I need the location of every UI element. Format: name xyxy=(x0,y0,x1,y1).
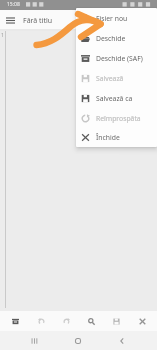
staticText: 15:08 xyxy=(7,1,20,8)
staticText: Reîmprospăta xyxy=(96,114,141,123)
button[interactable]: Home xyxy=(68,331,87,350)
button[interactable]: Deschide (SAF) xyxy=(76,48,157,68)
button[interactable]: Open file xyxy=(5,311,25,331)
staticText: Închide xyxy=(96,133,120,142)
staticText: Deschide (SAF) xyxy=(96,54,143,63)
button[interactable]: Redo xyxy=(56,311,76,331)
button[interactable]: Fișier nou xyxy=(76,8,157,28)
staticText: Fără titlu xyxy=(23,16,53,26)
button[interactable]: Search xyxy=(81,311,101,331)
button[interactable]: Salvează ca xyxy=(76,88,157,108)
staticText: Salvează xyxy=(96,74,124,83)
staticText: 1 xyxy=(1,32,4,39)
button[interactable]: Recents xyxy=(24,331,43,350)
button[interactable]: Back xyxy=(112,331,131,350)
button[interactable]: Close xyxy=(132,311,152,331)
button[interactable]: Deschide xyxy=(76,28,157,48)
staticText: Deschide xyxy=(96,34,126,43)
staticText: Salvează ca xyxy=(96,94,133,103)
button[interactable]: Salvează xyxy=(76,68,157,88)
button[interactable]: Save xyxy=(106,311,126,331)
button[interactable]: Open navigation drawer xyxy=(0,10,21,31)
button[interactable]: Undo xyxy=(31,311,51,331)
staticText: Fișier nou xyxy=(96,14,128,23)
button[interactable]: Închide xyxy=(76,128,157,147)
button[interactable]: Reîmprospăta xyxy=(76,108,157,128)
